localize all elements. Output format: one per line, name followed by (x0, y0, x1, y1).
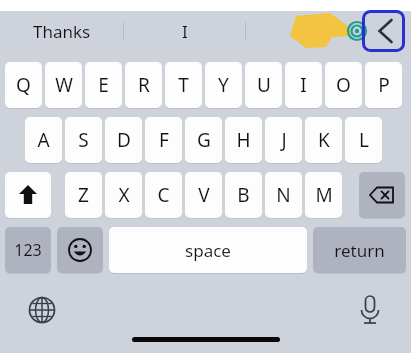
staticText: S (78, 127, 89, 153)
staticText: Y (218, 72, 229, 98)
staticText: Thanks (33, 20, 91, 43)
button[interactable]: K (305, 117, 342, 163)
button[interactable]: Emoji (57, 227, 103, 273)
button[interactable]: N (265, 172, 302, 218)
button[interactable]: R (125, 62, 162, 108)
staticText: R (138, 72, 150, 98)
button[interactable]: X (105, 172, 142, 218)
staticText: U (257, 72, 271, 98)
staticText: J (281, 127, 287, 153)
staticText: W (55, 72, 73, 98)
button[interactable]: C (145, 172, 182, 218)
staticText: O (336, 72, 351, 98)
button[interactable]: I (285, 62, 322, 108)
staticText: A (37, 127, 50, 153)
button[interactable]: Backspace (359, 172, 405, 218)
button[interactable]: O (325, 62, 362, 108)
button[interactable]: Dictate (350, 292, 390, 328)
staticText: V (198, 182, 210, 208)
button[interactable]: D (105, 117, 142, 163)
staticText: H (236, 127, 251, 153)
button[interactable]: Shift (5, 172, 51, 218)
staticText: 123 (14, 239, 42, 261)
staticText: return (334, 239, 385, 262)
button[interactable]: L (345, 117, 382, 163)
staticText: T (178, 72, 189, 98)
button[interactable]: return (313, 227, 406, 273)
staticText: C (157, 182, 170, 208)
button[interactable]: B (225, 172, 262, 218)
button[interactable]: Y (205, 62, 242, 108)
button[interactable]: Switch keyboard (22, 292, 62, 328)
staticText: K (318, 127, 330, 153)
button[interactable]: V (185, 172, 222, 218)
button[interactable]: J (265, 117, 302, 163)
staticText: N (276, 182, 291, 208)
staticText: Q (16, 72, 31, 98)
button[interactable]: E (85, 62, 122, 108)
button[interactable]: H (225, 117, 262, 163)
button[interactable]: S (65, 117, 102, 163)
button[interactable]: Q (5, 62, 42, 108)
staticText: P (378, 72, 390, 98)
button[interactable]: I (128, 16, 242, 46)
button[interactable]: space (109, 227, 307, 273)
staticText: M (315, 182, 333, 208)
staticText: Z (78, 182, 89, 208)
staticText: L (359, 127, 369, 153)
button[interactable]: G (185, 117, 222, 163)
button[interactable]: T (165, 62, 202, 108)
button[interactable]: P (365, 62, 402, 108)
staticText: B (237, 182, 250, 208)
staticText: I (300, 72, 307, 98)
staticText: D (117, 127, 131, 153)
button[interactable]: M (305, 172, 342, 218)
staticText: G (197, 127, 211, 153)
button[interactable]: 123 (5, 227, 51, 273)
staticText: F (159, 127, 169, 153)
staticText: I (182, 20, 188, 43)
button[interactable]: F (145, 117, 182, 163)
button[interactable]: Back (362, 10, 405, 52)
button[interactable]: Z (65, 172, 102, 218)
button[interactable]: A (25, 117, 62, 163)
button[interactable]: Thanks (8, 16, 116, 46)
staticText: X (118, 182, 130, 208)
button[interactable]: W (45, 62, 82, 108)
staticText: space (185, 239, 231, 262)
staticText: E (98, 72, 109, 98)
button[interactable]: U (245, 62, 282, 108)
